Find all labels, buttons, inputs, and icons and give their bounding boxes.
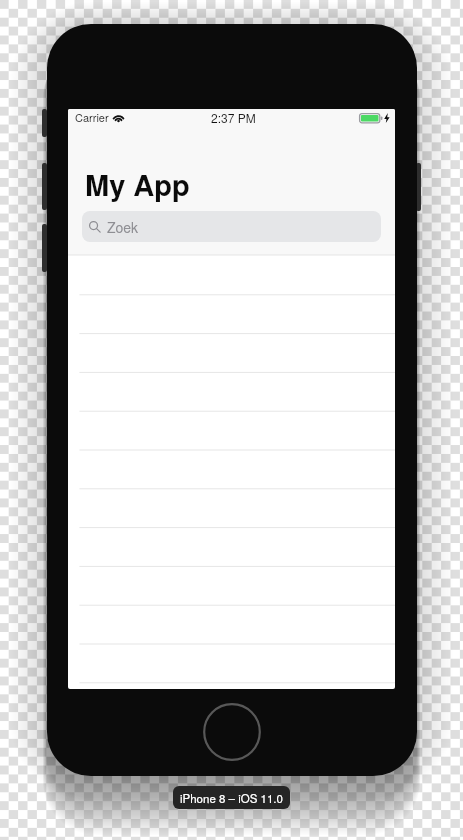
staticText: Zoek bbox=[107, 217, 139, 237]
other: Wi-Fi signal bbox=[112, 113, 125, 122]
button[interactable] bbox=[68, 566, 395, 605]
staticText: My App bbox=[85, 163, 190, 205]
other: Battery charging bbox=[359, 113, 391, 124]
button[interactable]: Zoek bbox=[82, 211, 381, 242]
button[interactable] bbox=[68, 527, 395, 566]
button[interactable] bbox=[68, 450, 395, 489]
button[interactable] bbox=[68, 644, 395, 683]
staticText: Carrier bbox=[75, 109, 109, 125]
button[interactable] bbox=[68, 372, 395, 411]
staticText: 2:37 PM bbox=[211, 109, 256, 126]
button[interactable] bbox=[68, 333, 395, 372]
button[interactable] bbox=[68, 411, 395, 450]
button[interactable] bbox=[68, 605, 395, 644]
staticText: iPhone 8 – iOS 11.0 bbox=[180, 790, 283, 806]
